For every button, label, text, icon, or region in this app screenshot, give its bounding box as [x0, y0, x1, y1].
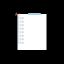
staticText: Row [17, 27, 23, 30]
staticText: Row [17, 34, 23, 37]
staticText: Row [17, 20, 23, 23]
staticText: Row [17, 37, 23, 41]
staticText: Row [17, 23, 23, 27]
staticText: Row [17, 16, 23, 20]
staticText: Aa [15, 11, 20, 17]
staticText: Row [17, 41, 23, 44]
staticText: Row [17, 30, 23, 34]
